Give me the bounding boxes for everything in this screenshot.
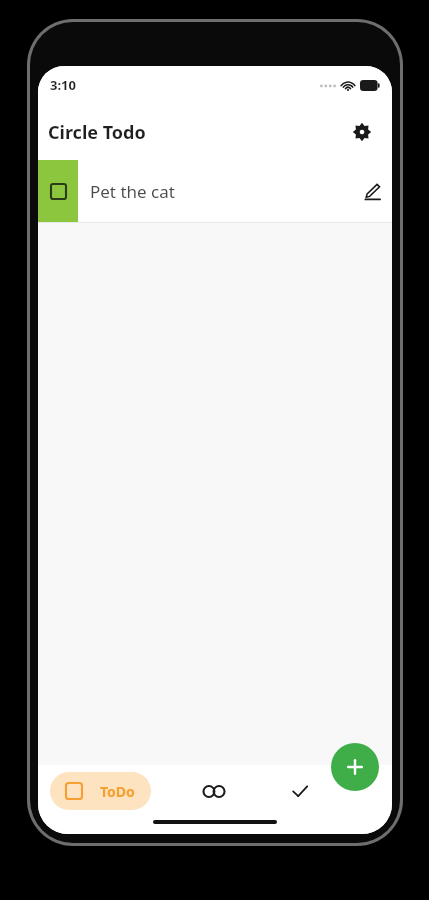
staticText: Pet the cat: [90, 180, 352, 203]
button[interactable]: Habits: [192, 769, 236, 813]
button[interactable]: Edit: [352, 171, 392, 211]
button[interactable]: Settings: [342, 112, 382, 152]
button[interactable]: ToDo: [50, 772, 151, 810]
staticText: Circle Todo: [48, 120, 146, 145]
button[interactable]: Completed: [278, 769, 322, 813]
button[interactable]: Toggle done: [38, 160, 78, 222]
staticText: ToDo: [100, 782, 135, 801]
button[interactable]: Add todo: [331, 743, 379, 791]
button[interactable]: Toggle done: [38, 160, 392, 222]
staticText: 3:10: [50, 76, 76, 94]
